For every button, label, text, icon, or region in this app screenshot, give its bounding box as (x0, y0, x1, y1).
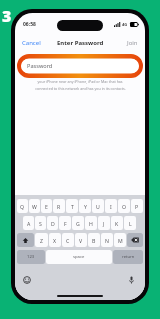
button[interactable]: Y (79, 199, 91, 213)
staticText: Password (27, 62, 53, 70)
button[interactable]: K (111, 216, 123, 230)
staticText: I (110, 203, 112, 210)
button[interactable]: O (118, 199, 130, 213)
button[interactable]: D (47, 216, 58, 230)
staticText: A (27, 220, 31, 227)
staticText: H (89, 220, 93, 227)
staticText: F (64, 220, 67, 227)
staticText: L (129, 220, 132, 227)
button[interactable]: R (53, 199, 65, 213)
button[interactable]: Emoji (22, 275, 32, 285)
staticText: K (115, 220, 119, 227)
staticText: X (53, 237, 57, 244)
button[interactable]: W (29, 199, 40, 213)
staticText: Z (40, 237, 43, 244)
button[interactable]: space (46, 250, 112, 264)
button[interactable]: N (101, 233, 113, 247)
button[interactable]: U (92, 199, 104, 213)
staticText: M (118, 237, 123, 244)
button[interactable]: I (105, 199, 117, 213)
button[interactable]: V (75, 233, 87, 247)
staticText: Q (20, 203, 25, 210)
button[interactable]: X (49, 233, 61, 247)
button[interactable]: G (72, 216, 84, 230)
staticText: connected to this network and has you in… (35, 86, 126, 91)
staticText: your iPhone near any iPhone, iPad or Mac… (37, 79, 123, 84)
staticText: return (122, 254, 135, 260)
staticText: 123 (27, 254, 35, 260)
staticText: B (92, 237, 96, 244)
staticText: Enter Password (57, 39, 104, 47)
button[interactable]: T (66, 199, 78, 213)
button[interactable]: 123 (17, 250, 45, 264)
staticText: V (79, 237, 83, 244)
staticText: E (45, 203, 48, 210)
staticText: Cancel (22, 39, 41, 47)
button[interactable]: A (23, 216, 34, 230)
staticText: J (103, 220, 105, 227)
staticText: C (66, 237, 70, 244)
button[interactable]: L (124, 216, 136, 230)
staticText: N (105, 237, 109, 244)
button[interactable]: Cancel (15, 36, 45, 50)
button[interactable]: C (62, 233, 74, 247)
staticText: T (71, 203, 74, 210)
button[interactable]: M (114, 233, 126, 247)
staticText: S (39, 220, 42, 227)
button[interactable]: J (98, 216, 110, 230)
button[interactable]: Q (17, 199, 28, 213)
button[interactable]: S (35, 216, 46, 230)
button[interactable]: P (131, 199, 143, 213)
staticText: P (135, 203, 139, 210)
staticText: U (96, 203, 100, 210)
button[interactable]: Join (123, 36, 145, 50)
button[interactable]: H (85, 216, 97, 230)
button[interactable]: return (113, 250, 143, 264)
staticText: R (57, 203, 61, 210)
button[interactable]: F (59, 216, 71, 230)
button[interactable]: Shift (17, 233, 34, 247)
staticText: 06:58 (23, 21, 36, 28)
staticText: Join (127, 39, 138, 47)
staticText: Y (84, 203, 87, 210)
staticText: 3 (2, 5, 12, 27)
staticText: G (76, 220, 80, 227)
button[interactable]: Z (35, 233, 48, 247)
staticText: D (51, 220, 55, 227)
staticText: W (32, 203, 37, 210)
button[interactable]: B (88, 233, 100, 247)
button[interactable]: Dictation (126, 275, 136, 285)
staticText: 4G (122, 22, 128, 27)
staticText: O (122, 203, 127, 210)
staticText: space (73, 254, 85, 260)
button[interactable]: E (41, 199, 52, 213)
button[interactable]: Backspace (127, 233, 143, 247)
button[interactable]: Password (21, 59, 139, 73)
